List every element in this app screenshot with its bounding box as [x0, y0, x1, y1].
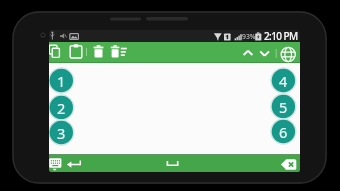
button[interactable] — [68, 43, 84, 60]
staticText: 93% — [242, 32, 255, 41]
staticText: 2 — [57, 98, 66, 118]
staticText: 1 — [57, 71, 66, 91]
staticText: 6 — [279, 122, 288, 142]
button[interactable] — [108, 43, 128, 60]
staticText: 5 — [279, 97, 288, 117]
button[interactable] — [48, 43, 62, 60]
button[interactable] — [279, 155, 298, 172]
button[interactable]: 1 — [49, 69, 73, 93]
button[interactable] — [163, 155, 180, 172]
button[interactable] — [280, 44, 297, 62]
staticText: 2:10 PM — [264, 29, 298, 43]
staticText: 4 — [279, 71, 288, 91]
button[interactable] — [240, 44, 256, 60]
button[interactable]: 6 — [271, 120, 295, 144]
button[interactable] — [91, 43, 106, 60]
button[interactable]: 4 — [271, 69, 295, 93]
button[interactable]: 2 — [49, 96, 73, 120]
button[interactable] — [257, 44, 273, 60]
button[interactable] — [66, 155, 82, 172]
button[interactable]: 5 — [271, 95, 295, 119]
button[interactable]: 3 — [49, 121, 73, 145]
staticText: 3 — [57, 123, 66, 143]
button[interactable] — [48, 155, 63, 172]
